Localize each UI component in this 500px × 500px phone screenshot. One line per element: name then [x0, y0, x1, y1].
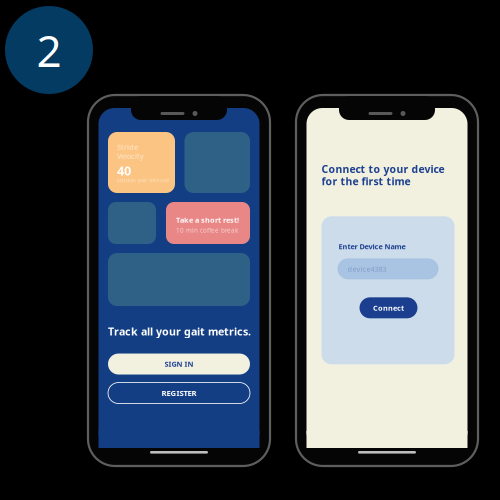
staticText: 2 — [36, 20, 61, 80]
staticText: Track all your gait metrics. — [108, 324, 251, 338]
staticText: device4383 — [347, 264, 386, 274]
staticText: Stride — [117, 142, 138, 152]
staticText: Connect — [373, 303, 404, 313]
staticText: Connect to your device — [321, 162, 444, 176]
staticText: Velocity — [117, 151, 144, 161]
staticText: for the first time — [321, 174, 410, 188]
staticText: strides per minute — [117, 176, 169, 184]
staticText: Take a short rest! — [176, 215, 239, 225]
button[interactable]: Connect — [359, 297, 417, 318]
staticText: 40 — [117, 162, 131, 179]
staticText: SIGN IN — [164, 359, 193, 369]
staticText: 10 min coffee break — [176, 226, 238, 234]
button[interactable]: SIGN IN — [108, 353, 250, 374]
staticText: REGISTER — [161, 388, 196, 398]
button[interactable]: REGISTER — [108, 382, 250, 403]
staticText: Enter Device Name — [338, 241, 405, 251]
